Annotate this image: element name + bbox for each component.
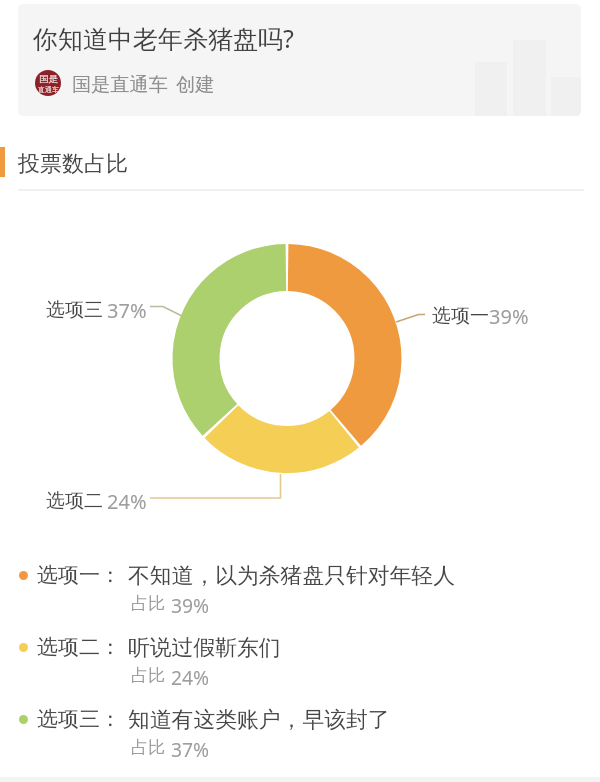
staticText: 占比 xyxy=(131,737,165,758)
staticText: 知道有这类账户，早该封了 xyxy=(128,706,390,733)
staticText: 选项三： xyxy=(37,706,121,732)
staticText: 选项二 xyxy=(46,489,103,513)
other: 国是直通车 头像 xyxy=(35,70,61,96)
staticText: 你知道中老年杀猪盘吗? xyxy=(33,21,294,55)
staticText: 占比 xyxy=(131,665,165,686)
staticText: 创建 xyxy=(176,73,215,97)
staticText: 选项一 xyxy=(432,304,489,328)
staticText: 听说过假靳东们 xyxy=(128,634,281,661)
staticText: 24% xyxy=(171,664,210,690)
staticText: 37% xyxy=(171,736,210,762)
staticText: 选项二： xyxy=(37,634,121,660)
staticText: 不知道，以为杀猪盘只针对年轻人 xyxy=(128,562,455,589)
staticText: 37% xyxy=(107,297,147,324)
button[interactable]: 选项二： xyxy=(0,624,600,690)
button[interactable]: 选项三： xyxy=(0,696,600,762)
staticText: 直通车 xyxy=(38,85,59,94)
staticText: 选项一： xyxy=(37,562,121,588)
button[interactable]: 选项二 xyxy=(46,489,103,516)
staticText: 投票数占比 xyxy=(18,150,128,178)
staticText: 39% xyxy=(489,303,529,330)
staticText: 国是直通车 xyxy=(72,73,168,97)
staticText: 39% xyxy=(171,592,210,618)
button[interactable]: 选项一： xyxy=(0,552,600,618)
staticText: 24% xyxy=(107,488,147,515)
button[interactable]: 选项三 xyxy=(46,298,103,325)
staticText: 国是 xyxy=(39,73,58,85)
staticText: 选项三 xyxy=(46,298,103,322)
staticText: 占比 xyxy=(131,593,165,614)
button[interactable]: 选项一 xyxy=(432,304,489,331)
